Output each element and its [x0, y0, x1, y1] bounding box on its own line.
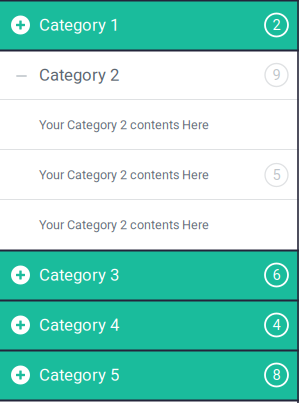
staticText: 4: [272, 316, 280, 334]
staticText: 9: [272, 66, 280, 84]
button[interactable]: Category 4: [0, 300, 299, 350]
staticText: Category 5: [39, 365, 119, 385]
staticText: 2: [272, 16, 280, 34]
staticText: Your Category 2 contents Here: [39, 168, 209, 182]
staticText: Category 2: [39, 65, 119, 85]
button[interactable]: Category 1: [0, 0, 299, 50]
staticText: Your Category 2 contents Here: [39, 218, 209, 232]
staticText: Your Category 2 contents Here: [39, 118, 209, 132]
button[interactable]: Category 5: [0, 350, 299, 400]
button[interactable]: Your Category 2 contents Here: [0, 150, 299, 200]
button[interactable]: Category 3: [0, 250, 299, 300]
staticText: Category 4: [39, 315, 119, 335]
staticText: Category 3: [39, 265, 119, 285]
button[interactable]: Your Category 2 contents Here: [0, 200, 299, 250]
staticText: 5: [272, 166, 280, 184]
staticText: 8: [272, 366, 280, 384]
staticText: 6: [272, 266, 280, 284]
staticText: Category 1: [39, 15, 119, 35]
button[interactable]: Your Category 2 contents Here: [0, 100, 299, 150]
button[interactable]: Category 2: [0, 50, 299, 100]
